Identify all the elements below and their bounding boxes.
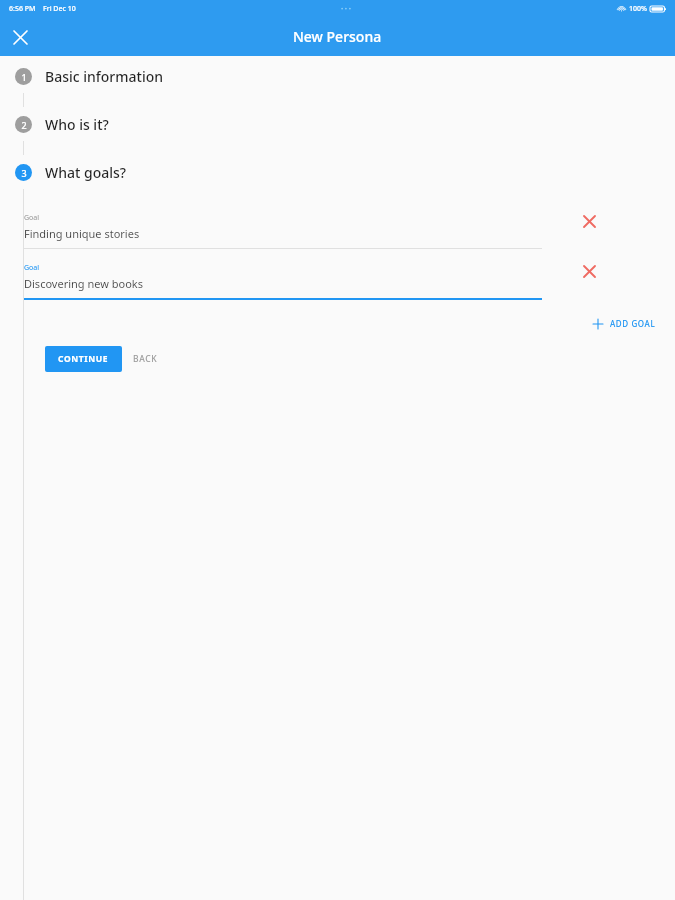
staticText: New Persona xyxy=(293,27,382,46)
staticText: 6:56 PM xyxy=(9,4,36,14)
button[interactable]: Delete goal xyxy=(574,256,604,286)
staticText: 100% xyxy=(629,4,647,14)
button[interactable]: Delete goal xyxy=(574,206,604,236)
staticText: Finding unique stories xyxy=(24,226,140,241)
button[interactable]: CONTINUE xyxy=(45,346,122,372)
staticText: 1 xyxy=(21,71,27,83)
button[interactable]: Close xyxy=(4,21,36,53)
staticText: Discovering new books xyxy=(24,276,143,291)
button[interactable]: Goal xyxy=(24,256,542,300)
staticText: CONTINUE xyxy=(58,353,109,365)
button[interactable]: BACK xyxy=(122,346,169,372)
staticText: Basic information xyxy=(45,67,164,86)
staticText: ADD GOAL xyxy=(610,318,656,329)
button[interactable]: ADD GOAL xyxy=(585,312,664,335)
staticText: Fri Dec 10 xyxy=(43,4,76,14)
button[interactable]: Goal xyxy=(24,206,542,249)
staticText: What goals? xyxy=(45,163,127,182)
staticText: 2 xyxy=(21,119,27,131)
staticText: Goal xyxy=(24,263,40,273)
button[interactable]: 3 xyxy=(0,155,675,189)
staticText: BACK xyxy=(133,353,158,365)
staticText: Who is it? xyxy=(45,115,109,134)
button[interactable]: 1 xyxy=(0,59,675,93)
staticText: 3 xyxy=(21,167,27,179)
staticText: Goal xyxy=(24,213,40,223)
staticText: • • • xyxy=(341,5,351,13)
button[interactable]: 2 xyxy=(0,107,675,141)
